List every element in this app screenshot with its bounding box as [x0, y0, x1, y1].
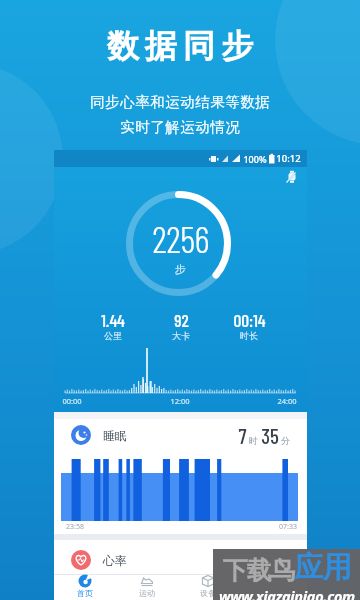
button[interactable]: 运动 — [116, 574, 177, 600]
staticText: 35 — [261, 423, 279, 448]
staticText: 07:33 — [279, 522, 297, 532]
staticText: 大卡 — [172, 330, 190, 341]
staticText: 时 — [249, 435, 258, 446]
button[interactable]: 我的 — [238, 574, 299, 600]
staticText: 2256 — [152, 216, 209, 260]
staticText: 7 — [238, 423, 247, 448]
staticText: 分 — [281, 435, 290, 446]
staticText: 首页 — [77, 588, 93, 598]
button[interactable]: 下载鸟 — [213, 549, 360, 600]
button[interactable]: 首页 — [54, 574, 116, 600]
staticText: 00:14 — [233, 309, 266, 330]
staticText: 12:00 — [170, 396, 190, 406]
staticText: 下载鸟 — [223, 555, 295, 586]
staticText: 心率 — [103, 553, 127, 568]
staticText: 步 — [175, 262, 186, 276]
staticText: 运动 — [139, 588, 155, 598]
staticText: www.xiazainiao.com — [219, 586, 355, 600]
staticText: 数据同步 — [104, 26, 256, 66]
staticText: 00:00 — [62, 396, 82, 406]
staticText: 实时了解运动情况 — [120, 118, 240, 136]
staticText: 设备 — [200, 588, 216, 598]
staticText: 10:12 — [276, 152, 301, 165]
staticText: 24:00 — [277, 396, 297, 406]
staticText: 23:58 — [66, 522, 84, 532]
staticText: 同步心率和运动结果等数据 — [90, 93, 270, 111]
staticText: 公里 — [104, 330, 122, 341]
button[interactable]: 心率 — [54, 540, 307, 574]
staticText: 时长 — [240, 330, 258, 341]
staticText: 应用 — [295, 549, 351, 586]
staticText: 1.44 — [101, 309, 125, 330]
staticText: 92 — [174, 309, 189, 330]
button[interactable]: 设备 — [177, 574, 238, 600]
staticText: 100% — [243, 153, 267, 165]
button[interactable]: 睡眠 — [54, 419, 307, 534]
staticText: 我的 — [261, 588, 277, 598]
staticText: 睡眠 — [103, 428, 127, 443]
